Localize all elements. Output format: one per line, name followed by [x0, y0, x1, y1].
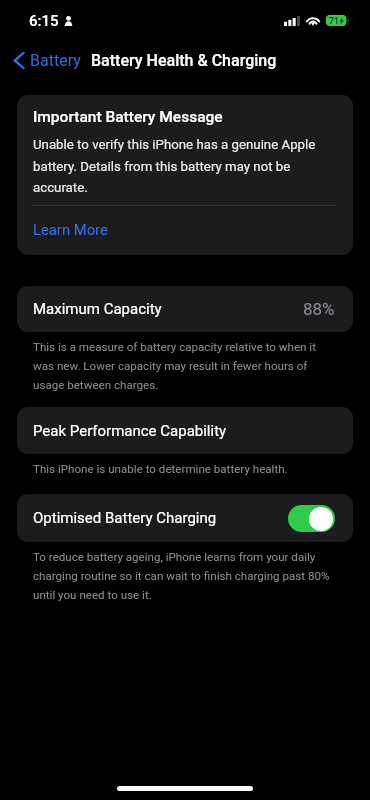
- staticText: Optimised Battery Charging: [33, 509, 217, 527]
- staticText: This is a measure of battery capacity re…: [33, 340, 334, 392]
- staticText: 6:15: [29, 12, 59, 30]
- staticText: Learn More: [33, 221, 108, 238]
- staticText: 71: [329, 16, 339, 26]
- button[interactable]: Battery: [13, 51, 81, 70]
- staticText: Unable to verify this iPhone has a genui…: [33, 137, 337, 195]
- staticText: Peak Performance Capability: [33, 422, 227, 440]
- staticText: To reduce battery ageing, iPhone learns …: [33, 550, 334, 602]
- staticText: Battery: [30, 51, 81, 70]
- staticText: 88%: [303, 299, 335, 319]
- button[interactable]: Optimised Battery Charging toggle: [288, 505, 335, 532]
- button[interactable]: Optimised Battery Charging: [17, 494, 353, 542]
- button[interactable]: Peak Performance Capability: [17, 407, 353, 454]
- staticText: Important Battery Message: [33, 108, 223, 126]
- staticText: Battery Health & Charging: [91, 51, 277, 70]
- staticText: This iPhone is unable to determine batte…: [33, 462, 288, 476]
- staticText: Maximum Capacity: [33, 300, 162, 318]
- button[interactable]: Maximum Capacity: [17, 286, 353, 332]
